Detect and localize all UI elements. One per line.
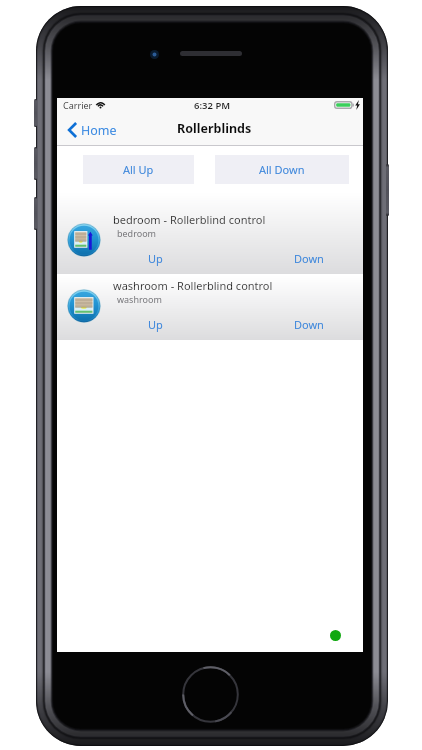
button[interactable]: Home button (182, 666, 239, 723)
button[interactable]: Home (57, 116, 127, 146)
staticText: Carrier (63, 99, 93, 111)
staticText: bedroom - Rollerblind control (113, 212, 266, 227)
button[interactable]: All Up (83, 155, 194, 184)
staticText: Down (294, 317, 324, 332)
staticText: Home (81, 122, 117, 139)
staticText: All Down (259, 162, 305, 177)
staticText: Up (148, 317, 163, 332)
button[interactable]: Up (57, 245, 254, 274)
staticText: 6:32 PM (194, 99, 231, 112)
staticText: Up (148, 251, 163, 266)
button[interactable]: washroom - Rollerblind control (57, 275, 363, 340)
staticText: Rollerblinds (177, 120, 252, 137)
button[interactable]: bedroom - Rollerblind control (57, 192, 363, 274)
staticText: washroom (117, 293, 162, 305)
button[interactable]: Down (254, 245, 363, 274)
button[interactable]: Up (57, 311, 254, 340)
staticText: Down (294, 251, 324, 266)
button[interactable]: Down (254, 311, 363, 340)
button[interactable]: All Down (215, 155, 349, 184)
staticText: bedroom (117, 227, 156, 239)
staticText: washroom - Rollerblind control (113, 278, 273, 293)
staticText: All Up (123, 162, 154, 177)
